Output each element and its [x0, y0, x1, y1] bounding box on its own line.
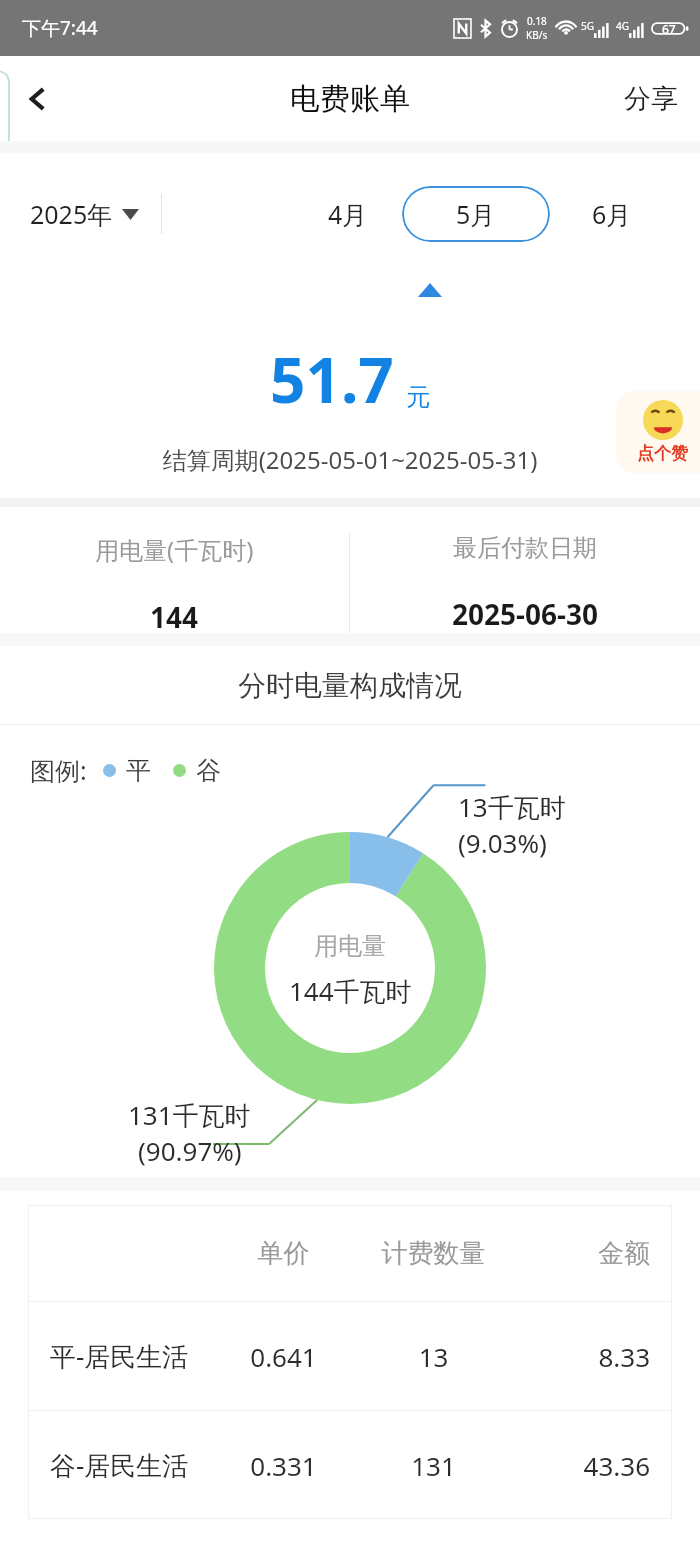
staticText: 谷 [196, 755, 221, 786]
staticText: 元 [406, 382, 430, 412]
staticText: 131千瓦时 [128, 1097, 251, 1133]
button[interactable]: 返回 [6, 67, 70, 131]
staticText: 点个赞 [637, 443, 688, 464]
staticText: 13 [350, 1339, 517, 1374]
staticText: 计费数量 [350, 1237, 517, 1270]
staticText: 2025-06-30 [452, 595, 599, 633]
staticText: (9.03%) [458, 825, 547, 860]
button[interactable]: 平-居民生活 [28, 1302, 672, 1410]
staticText: 单价 [217, 1237, 350, 1270]
staticText: 4G [616, 19, 629, 33]
staticText: 144 [150, 598, 199, 633]
staticText: 5月 [456, 197, 496, 231]
staticText: 131 [350, 1448, 517, 1483]
staticText: 用电量(千瓦时) [95, 533, 254, 566]
staticText: (90.97%) [138, 1133, 242, 1168]
button[interactable]: 2025年 [30, 197, 139, 231]
staticText: 图例: [30, 753, 87, 787]
button[interactable]: 5月 [402, 186, 550, 242]
button[interactable]: 4月 [312, 185, 384, 243]
staticText: 平-居民生活 [50, 1338, 217, 1374]
staticText: 0.641 [217, 1339, 350, 1374]
staticText: 5G [581, 19, 594, 33]
staticText: KB/s [526, 28, 548, 42]
button[interactable]: 谷-居民生活 [28, 1411, 672, 1519]
staticText: 平 [126, 755, 151, 786]
staticText: 8.33 [517, 1339, 650, 1374]
staticText: 下午7:44 [22, 15, 98, 41]
button[interactable]: 6月 [576, 185, 648, 243]
staticText: 51.7 [270, 337, 394, 421]
staticText: 分享 [624, 82, 678, 116]
staticText: 金额 [517, 1237, 650, 1270]
staticText: 43.36 [517, 1448, 650, 1483]
staticText: 13千瓦时 [458, 789, 566, 825]
staticText: 0.331 [217, 1448, 350, 1483]
button[interactable]: 点个赞 [616, 391, 700, 473]
staticText: 0.18 [527, 14, 547, 28]
staticText: 67 [662, 21, 676, 37]
staticText: 用电量 [314, 931, 386, 961]
button[interactable]: 分享 [602, 66, 700, 132]
staticText: 分时电量构成情况 [238, 668, 462, 703]
staticText: 电费账单 [290, 80, 410, 118]
staticText: 结算周期(2025-05-01~2025-05-31) [0, 443, 700, 476]
staticText: 144千瓦时 [289, 973, 412, 1009]
staticText: 6月 [592, 197, 632, 231]
staticText: 2025年 [30, 197, 113, 231]
staticText: 4月 [328, 197, 368, 231]
staticText: 最后付款日期 [453, 533, 597, 563]
staticText: 谷-居民生活 [50, 1447, 217, 1483]
